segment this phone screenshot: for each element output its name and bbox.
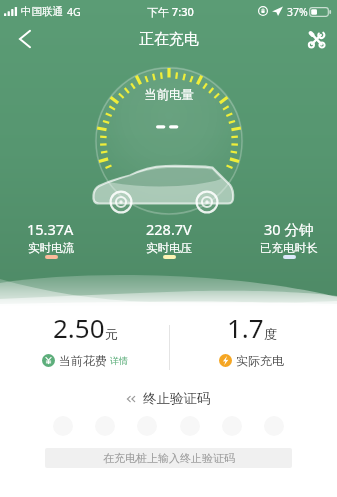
staticText: 中国联通 [21,5,63,18]
button[interactable] [222,416,242,436]
staticText: 228.7V [146,219,192,239]
staticText: 正在充电 [139,30,199,49]
staticText: 当前电量 [144,87,194,103]
button[interactable]: 2.50 [15,310,155,368]
button[interactable]: 终止验证码 [126,390,211,407]
button[interactable] [137,416,157,436]
button[interactable]: 在充电桩上输入终止验证码 [45,448,292,468]
staticText: 在充电桩上输入终止验证码 [103,451,235,465]
button[interactable]: 1.7 [181,310,321,368]
staticText: 37% [287,5,308,19]
staticText: 4G [67,5,81,19]
staticText: 15.37A [27,219,74,239]
staticText: 实际充电 [236,353,284,368]
staticText: 30 分钟 [264,219,314,239]
staticText: 2.50 [53,310,105,345]
staticText: 当前花费 [59,353,107,368]
staticText: 已充电时长 [260,241,318,255]
staticText: 下午 7:30 [147,4,194,19]
button[interactable]: 15.37A [0,219,105,256]
staticText: 实时电流 [28,241,74,255]
staticText: 1.7 [227,310,264,345]
staticText: 详情 [110,355,128,366]
button[interactable]: Back [8,22,42,56]
button[interactable]: Tools [300,23,332,55]
button[interactable]: 228.7V [114,219,224,256]
button[interactable] [53,416,73,436]
staticText: 终止验证码 [143,390,211,407]
button[interactable] [264,416,284,436]
button[interactable] [95,416,115,436]
staticText: 实时电压 [146,241,192,255]
button[interactable] [180,416,200,436]
button[interactable]: 30 分钟 [234,219,337,256]
staticText: 度 [264,326,277,342]
staticText: 元 [105,326,118,342]
